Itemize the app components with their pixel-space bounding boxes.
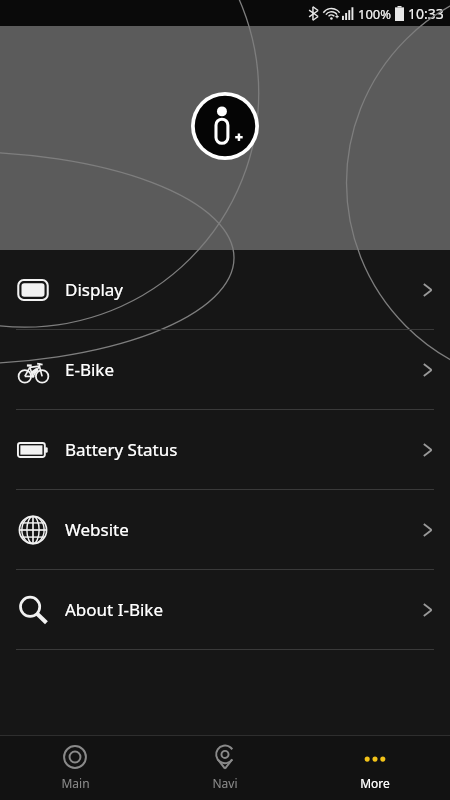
button[interactable]: Website bbox=[0, 490, 450, 569]
staticText: Website bbox=[65, 518, 129, 541]
button[interactable]: Battery Status bbox=[0, 410, 450, 489]
button[interactable]: E-Bike bbox=[0, 330, 450, 409]
staticText: Battery Status bbox=[65, 438, 178, 461]
staticText: Navi bbox=[212, 775, 238, 791]
staticText: E-Bike bbox=[65, 358, 115, 381]
button[interactable]: About I-Bike bbox=[0, 570, 450, 649]
staticText: More bbox=[360, 775, 390, 791]
staticText: About I-Bike bbox=[65, 598, 164, 621]
button[interactable]: Navi bbox=[150, 736, 300, 800]
staticText: 100% bbox=[358, 5, 392, 23]
other: Main bbox=[62, 744, 88, 770]
staticText: 10:33 bbox=[408, 4, 444, 23]
staticText: Display bbox=[65, 278, 123, 301]
staticText: Main bbox=[61, 775, 90, 791]
other: More bbox=[362, 744, 388, 770]
button[interactable]: Display bbox=[0, 250, 450, 329]
button[interactable]: More bbox=[300, 736, 450, 800]
button[interactable]: Main bbox=[0, 736, 150, 800]
other: Navi bbox=[212, 744, 238, 770]
